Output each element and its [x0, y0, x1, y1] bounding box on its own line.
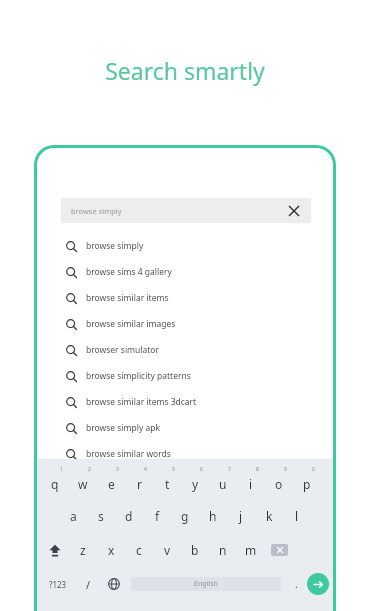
- button[interactable]: .: [285, 567, 307, 601]
- button[interactable]: s: [87, 499, 115, 533]
- button[interactable]: browse simply apk: [37, 415, 333, 441]
- staticText: q: [51, 476, 59, 492]
- button[interactable]: 5: [153, 465, 181, 499]
- staticText: g: [181, 508, 189, 524]
- staticText: f: [155, 508, 160, 524]
- button[interactable]: Change language: [101, 567, 127, 601]
- staticText: browse simply: [86, 240, 144, 252]
- button[interactable]: Clear search: [285, 202, 303, 220]
- staticText: t: [165, 476, 170, 492]
- staticText: n: [219, 542, 227, 558]
- button[interactable]: g: [171, 499, 199, 533]
- button[interactable]: browse similar images: [37, 311, 333, 337]
- button[interactable]: 7: [209, 465, 237, 499]
- staticText: .: [295, 577, 298, 591]
- button[interactable]: /: [75, 567, 101, 601]
- staticText: z: [80, 542, 86, 558]
- staticText: v: [164, 542, 171, 558]
- staticText: 5: [172, 466, 175, 473]
- staticText: k: [266, 508, 273, 524]
- staticText: browse simply apk: [86, 422, 161, 434]
- staticText: y: [192, 476, 199, 492]
- button[interactable]: English: [131, 577, 281, 591]
- staticText: 7: [228, 466, 231, 473]
- staticText: j: [239, 508, 243, 524]
- button[interactable]: 2: [69, 465, 97, 499]
- button[interactable]: l: [283, 499, 311, 533]
- staticText: i: [249, 476, 253, 492]
- button[interactable]: 4: [125, 465, 153, 499]
- button[interactable]: 6: [181, 465, 209, 499]
- button[interactable]: 0: [293, 465, 321, 499]
- staticText: h: [209, 508, 217, 524]
- button[interactable]: Search: [307, 573, 329, 595]
- button[interactable]: c: [125, 533, 153, 567]
- staticText: /: [86, 577, 91, 592]
- button[interactable]: ?123: [41, 567, 75, 601]
- staticText: x: [108, 542, 115, 558]
- button[interactable]: k: [255, 499, 283, 533]
- staticText: 6: [200, 466, 203, 473]
- staticText: r: [137, 476, 142, 492]
- staticText: w: [78, 476, 88, 492]
- staticText: m: [245, 542, 257, 558]
- staticText: 2: [88, 466, 91, 473]
- staticText: 3: [116, 466, 119, 473]
- button[interactable]: 3: [97, 465, 125, 499]
- staticText: Search smartly: [0, 55, 370, 86]
- staticText: c: [136, 542, 142, 558]
- staticText: browse simplicity patterns: [86, 370, 191, 382]
- staticText: b: [191, 542, 199, 558]
- button[interactable]: browser simulator: [37, 337, 333, 363]
- button[interactable]: f: [143, 499, 171, 533]
- staticText: browse simply: [71, 206, 122, 216]
- button[interactable]: browse similar items: [37, 285, 333, 311]
- button[interactable]: browse simply: [61, 198, 311, 223]
- button[interactable]: browse simplicity patterns: [37, 363, 333, 389]
- staticText: browse similar items: [86, 292, 169, 304]
- staticText: 9: [284, 466, 287, 473]
- staticText: d: [125, 508, 133, 524]
- button[interactable]: b: [181, 533, 209, 567]
- staticText: p: [303, 476, 311, 492]
- button[interactable]: Backspace: [265, 533, 293, 567]
- button[interactable]: n: [209, 533, 237, 567]
- staticText: e: [108, 476, 115, 492]
- staticText: a: [70, 508, 77, 524]
- staticText: browser simulator: [86, 344, 159, 356]
- staticText: s: [98, 508, 104, 524]
- button[interactable]: browse similar words: [37, 441, 333, 467]
- button[interactable]: Shift: [41, 533, 69, 567]
- button[interactable]: browse simply: [37, 233, 333, 259]
- button[interactable]: h: [199, 499, 227, 533]
- button[interactable]: 8: [237, 465, 265, 499]
- staticText: l: [295, 508, 299, 524]
- staticText: u: [219, 476, 227, 492]
- button[interactable]: 9: [265, 465, 293, 499]
- staticText: browse similar images: [86, 318, 176, 330]
- staticText: English: [194, 579, 218, 589]
- button[interactable]: v: [153, 533, 181, 567]
- button[interactable]: browse sims 4 gallery: [37, 259, 333, 285]
- staticText: o: [275, 476, 283, 492]
- button[interactable]: a: [59, 499, 87, 533]
- button[interactable]: d: [115, 499, 143, 533]
- button[interactable]: z: [69, 533, 97, 567]
- button[interactable]: browse similar items 3dcart: [37, 389, 333, 415]
- staticText: browse similar items 3dcart: [86, 396, 197, 408]
- button[interactable]: 1: [41, 465, 69, 499]
- staticText: ?123: [49, 579, 67, 590]
- staticText: browse sims 4 gallery: [86, 266, 172, 278]
- button[interactable]: x: [97, 533, 125, 567]
- staticText: 1: [60, 466, 63, 473]
- staticText: 0: [312, 466, 315, 473]
- staticText: 4: [144, 466, 147, 473]
- staticText: browse similar words: [86, 448, 171, 460]
- button[interactable]: j: [227, 499, 255, 533]
- button[interactable]: m: [237, 533, 265, 567]
- staticText: 8: [256, 466, 259, 473]
